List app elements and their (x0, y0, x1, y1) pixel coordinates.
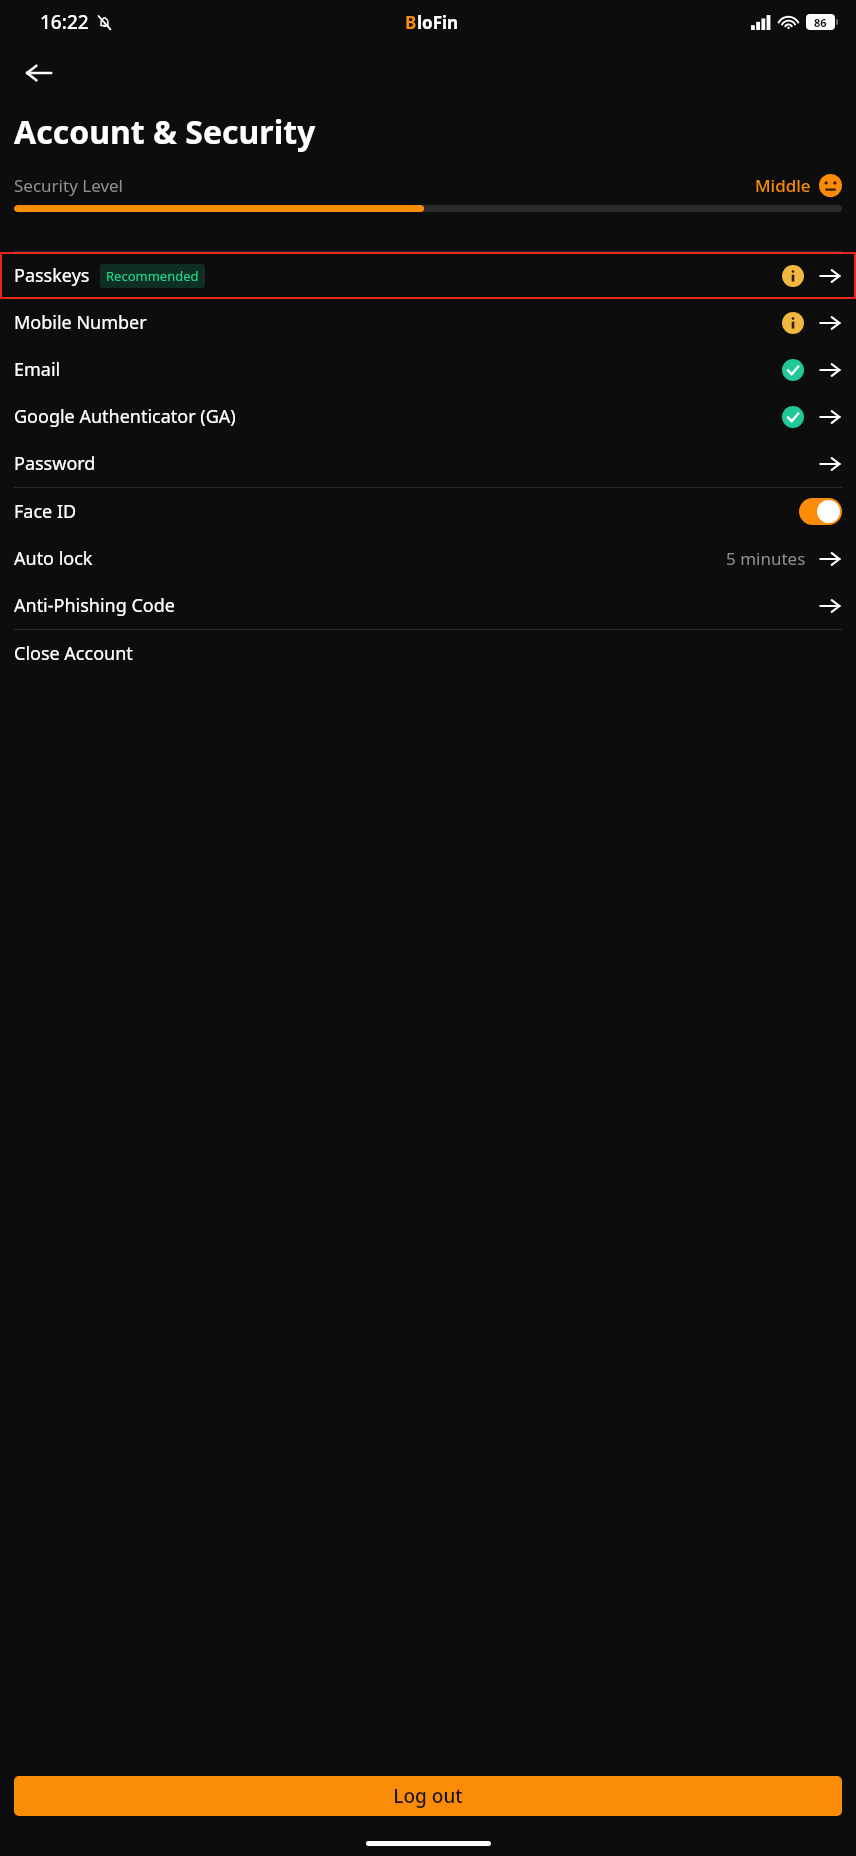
button[interactable]: Mobile Number (0, 299, 856, 346)
button[interactable]: Email (0, 346, 856, 393)
staticText: Log out (393, 1783, 463, 1809)
staticText: Anti-Phishing Code (14, 593, 175, 618)
button[interactable]: Passkeys (0, 252, 856, 299)
button[interactable]: Auto lock (0, 535, 856, 582)
staticText: Recommended (106, 267, 199, 285)
staticText: loFin (417, 11, 459, 34)
staticText: B (405, 11, 417, 34)
staticText: Middle (755, 174, 811, 197)
button[interactable]: Anti-Phishing Code (0, 582, 856, 629)
button[interactable]: Password (0, 440, 856, 487)
button[interactable]: Face ID (0, 488, 856, 535)
staticText: Password (14, 451, 96, 476)
other: Open (818, 405, 842, 429)
staticText: Face ID (14, 499, 77, 524)
other: Open (818, 547, 842, 571)
other: Open (818, 358, 842, 382)
other: Open (818, 264, 842, 288)
button[interactable]: Log out (14, 1776, 842, 1816)
staticText: Close Account (14, 641, 133, 666)
button[interactable]: Close Account (0, 630, 856, 677)
other: Open (818, 311, 842, 335)
staticText: 86 (814, 15, 827, 30)
staticText: 5 minutes (726, 547, 806, 570)
button[interactable]: Back (16, 50, 62, 96)
other: Open (818, 452, 842, 476)
staticText: Mobile Number (14, 310, 147, 335)
staticText: Google Authenticator (GA) (14, 404, 236, 429)
staticText: Security Level (14, 174, 123, 197)
staticText: Email (14, 357, 61, 382)
staticText: Auto lock (14, 546, 93, 571)
staticText: 16:22 (40, 9, 89, 35)
staticText: Passkeys (14, 263, 90, 288)
staticText: Account & Security (14, 110, 316, 154)
other: Open (818, 594, 842, 618)
button[interactable]: Google Authenticator (GA) (0, 393, 856, 440)
